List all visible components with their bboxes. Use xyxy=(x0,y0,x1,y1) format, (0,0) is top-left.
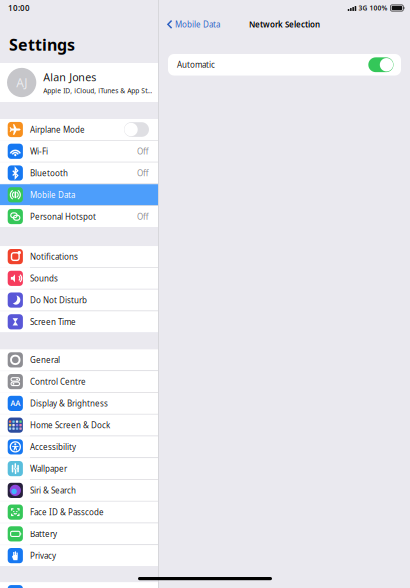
staticText: Off xyxy=(137,211,149,222)
staticText: Sounds xyxy=(30,273,58,284)
staticText: Apple ID, iCloud, iTunes & App St… xyxy=(43,86,152,95)
staticText: Bluetooth xyxy=(30,168,68,178)
button[interactable]: Screen Time xyxy=(0,311,158,332)
staticText: Battery xyxy=(30,529,57,539)
button[interactable]: Mobile Data xyxy=(0,184,158,205)
staticText: Accessibility xyxy=(30,442,76,452)
button[interactable]: Automatic xyxy=(168,54,401,75)
staticText: Alan Jones xyxy=(43,70,96,84)
staticText: AA xyxy=(10,398,20,409)
staticText: Siri & Search xyxy=(30,485,76,496)
staticText: Off xyxy=(137,146,149,157)
staticText: Wi-Fi xyxy=(30,146,48,157)
button[interactable]: Wallpaper xyxy=(0,458,158,479)
staticText: Face ID & Passcode xyxy=(30,507,104,517)
staticText: 10:00 xyxy=(8,2,30,13)
button[interactable]: Accessibility xyxy=(0,436,158,457)
staticText: Do Not Disturb xyxy=(30,295,87,305)
button[interactable]: Privacy xyxy=(0,545,158,566)
button[interactable]: Bluetooth xyxy=(0,162,158,184)
staticText: Privacy xyxy=(30,550,56,561)
button[interactable]: iTunes & App Store xyxy=(0,582,158,588)
button[interactable]: Do Not Disturb xyxy=(0,290,158,311)
staticText: 3G 100% xyxy=(359,4,388,12)
staticText: Display & Brightness xyxy=(30,398,108,409)
button[interactable]: General xyxy=(0,349,158,370)
staticText: Automatic xyxy=(177,59,215,70)
staticText: Control Centre xyxy=(30,376,86,387)
button[interactable]: Battery xyxy=(0,523,158,544)
staticText: AJ xyxy=(16,74,27,90)
staticText: Screen Time xyxy=(30,316,76,327)
staticText: Mobile Data xyxy=(30,189,75,200)
staticText: Wallpaper xyxy=(30,463,67,474)
staticText: Home Screen & Dock xyxy=(30,420,110,430)
button[interactable]: Home Screen & Dock xyxy=(0,415,158,436)
button[interactable]: AA xyxy=(0,393,158,414)
staticText: Settings xyxy=(9,34,75,55)
staticText: Mobile Data xyxy=(175,19,220,30)
staticText: Off xyxy=(137,168,149,178)
staticText: Airplane Mode xyxy=(30,124,85,135)
button[interactable]: AJ xyxy=(0,63,158,102)
button[interactable]: Notifications xyxy=(0,246,158,267)
staticText: General xyxy=(30,355,60,365)
button[interactable]: Airplane Mode xyxy=(0,119,158,140)
button[interactable]: Siri & Search xyxy=(0,480,158,501)
staticText: Network Selection xyxy=(249,19,320,30)
staticText: Personal Hotspot xyxy=(30,211,96,222)
button[interactable]: Personal Hotspot xyxy=(0,206,158,227)
button[interactable]: Face ID & Passcode xyxy=(0,502,158,523)
button[interactable]: Mobile Data xyxy=(159,16,224,33)
button[interactable]: Wi-Fi xyxy=(0,141,158,162)
staticText: Notifications xyxy=(30,251,78,262)
button[interactable]: Sounds xyxy=(0,268,158,289)
button[interactable]: Control Centre xyxy=(0,371,158,392)
